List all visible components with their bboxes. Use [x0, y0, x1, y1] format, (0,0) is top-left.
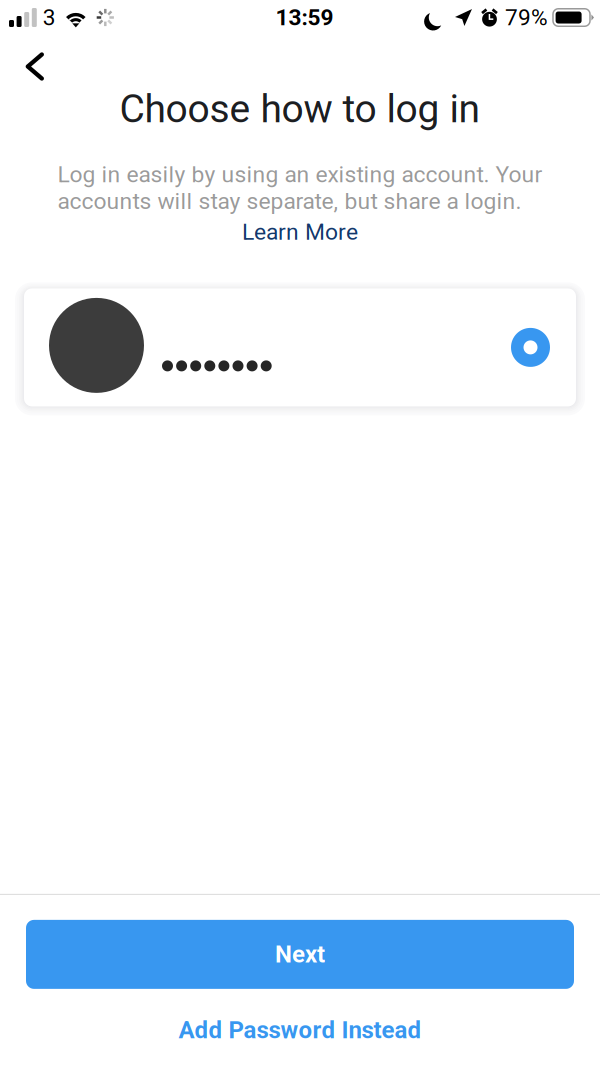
button[interactable]	[24, 288, 576, 406]
button[interactable]: Add Password Instead	[166, 1010, 433, 1050]
staticText: Learn More	[242, 219, 358, 245]
staticText: 3	[43, 4, 56, 31]
staticText: Add Password Instead	[178, 1016, 421, 1044]
button[interactable]: Back	[0, 32, 62, 82]
staticText: Next	[275, 940, 325, 968]
staticText: Choose how to log in	[119, 86, 480, 132]
button[interactable]: Next	[26, 920, 574, 989]
staticText: Log in easily by using an existing accou…	[57, 161, 542, 215]
button[interactable]: Learn More	[230, 216, 370, 248]
staticText: 13:59	[275, 4, 333, 31]
staticText: 79%	[505, 4, 548, 31]
